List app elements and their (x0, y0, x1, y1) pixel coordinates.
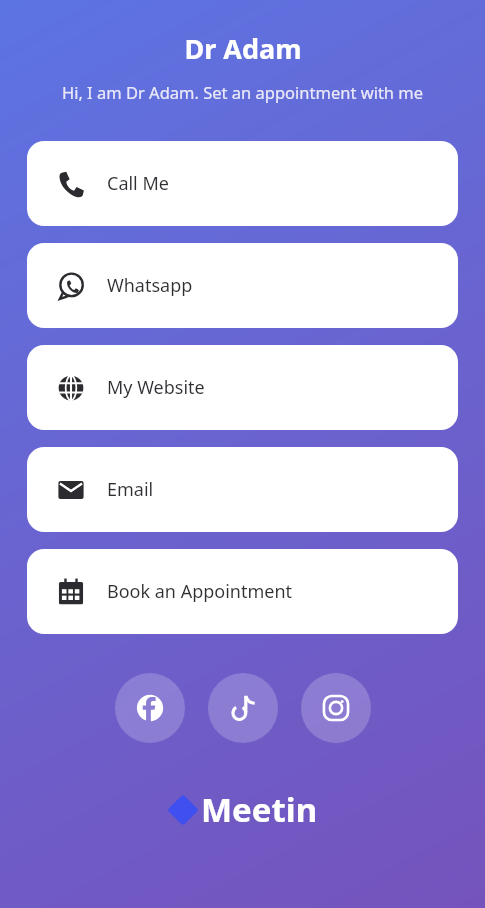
staticText: Call Me (107, 171, 169, 196)
staticText: Dr Adam (184, 30, 302, 67)
button[interactable]: Instagram (301, 673, 371, 743)
staticText: My Website (107, 375, 205, 400)
staticText: Whatsapp (107, 273, 193, 298)
button[interactable]: Call Me (27, 141, 458, 226)
staticText: Meetin (201, 787, 318, 832)
button[interactable]: My Website (27, 345, 458, 430)
staticText: Book an Appointment (107, 579, 293, 604)
button[interactable]: Book an Appointment (27, 549, 458, 634)
button[interactable]: Meetin (167, 787, 318, 832)
button[interactable]: Email (27, 447, 458, 532)
button[interactable]: Whatsapp (27, 243, 458, 328)
button[interactable]: Facebook (115, 673, 185, 743)
button[interactable]: TikTok (208, 673, 278, 743)
staticText: Email (107, 477, 154, 502)
staticText: Hi, I am Dr Adam. Set an appointment wit… (28, 81, 457, 103)
